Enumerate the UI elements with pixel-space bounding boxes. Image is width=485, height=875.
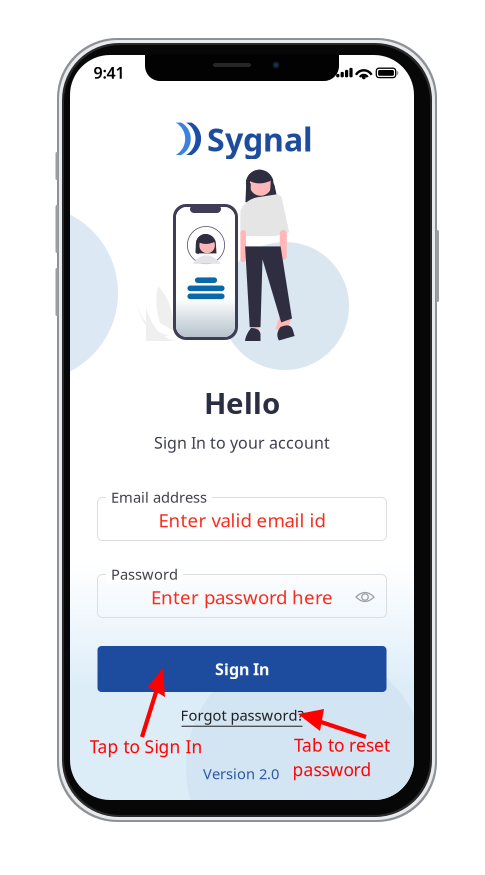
staticText: Enter valid email id [158, 508, 325, 532]
staticText: Tab to reset [294, 733, 390, 756]
staticText: Enter password here [151, 585, 333, 609]
staticText: Hello [204, 383, 280, 422]
staticText: Tap to Sign In [89, 735, 202, 758]
staticText: password [292, 758, 371, 781]
staticText: Sygnal [207, 118, 313, 160]
button[interactable]: Sign In [97, 646, 386, 692]
staticText: Sign In to your account [154, 432, 330, 453]
staticText: Forgot password? [180, 705, 303, 725]
button[interactable]: Forgot password? [180, 705, 303, 727]
staticText: Password [111, 564, 178, 584]
staticText: Email address [111, 487, 207, 507]
staticText: Sign In [215, 658, 269, 680]
staticText: Version 2.0 [203, 764, 279, 783]
staticText: 9:41 [93, 62, 124, 83]
